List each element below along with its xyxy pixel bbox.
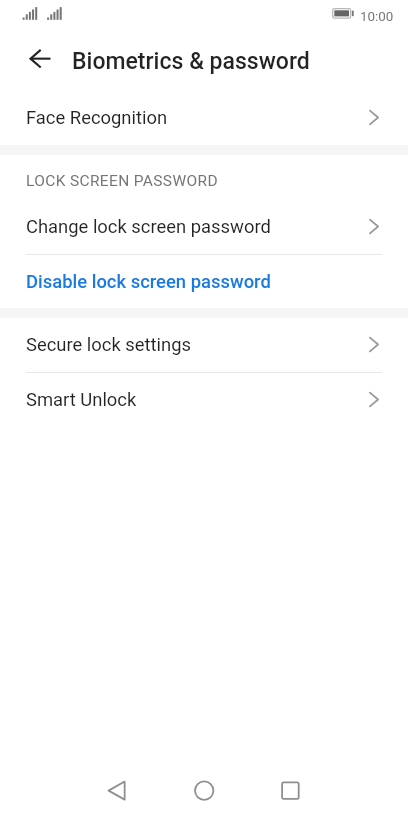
- button[interactable]: Face Recognition: [0, 91, 408, 145]
- staticText: LOCK SCREEN PASSWORD: [26, 172, 218, 190]
- button[interactable]: Change lock screen password: [0, 200, 408, 254]
- button[interactable]: Smart Unlock: [0, 373, 408, 427]
- staticText: 10:00: [360, 9, 394, 25]
- staticText: Secure lock settings: [26, 334, 369, 356]
- button[interactable]: Disable lock screen password: [0, 255, 408, 308]
- button[interactable]: Recent apps: [259, 760, 321, 816]
- button[interactable]: Home: [173, 760, 235, 816]
- staticText: Change lock screen password: [26, 216, 369, 238]
- staticText: Disable lock screen password: [26, 271, 382, 293]
- staticText: Face Recognition: [26, 107, 369, 129]
- staticText: Smart Unlock: [26, 389, 369, 411]
- button[interactable]: Navigate up: [12, 30, 60, 87]
- staticText: Biometrics & password: [72, 48, 310, 75]
- button[interactable]: Back: [86, 760, 148, 816]
- button[interactable]: Secure lock settings: [0, 318, 408, 372]
